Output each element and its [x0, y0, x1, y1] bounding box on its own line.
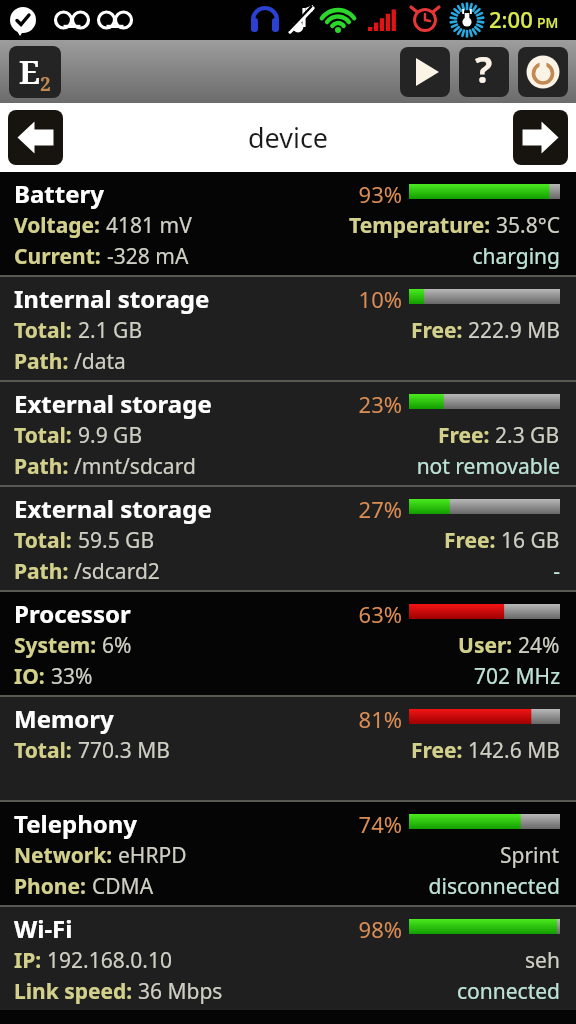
staticText: Network: [14, 841, 118, 870]
staticText: /sdcard2 [74, 557, 160, 586]
staticText: Current: [14, 242, 107, 271]
button[interactable]: External storage [0, 382, 576, 485]
staticText: /data [74, 347, 126, 376]
staticText: Total: [14, 526, 78, 555]
staticText: 27% [330, 494, 402, 524]
staticText: 192.168.0.10 [47, 946, 172, 975]
staticText: connected [0, 977, 560, 1006]
staticText: External storage [14, 387, 212, 420]
button[interactable]: Telephony [0, 802, 576, 905]
staticText: 2:00 [489, 4, 533, 34]
staticText: Sprint [500, 841, 560, 870]
button[interactable]: Elixir 2 home [9, 46, 61, 98]
staticText: 98% [330, 914, 402, 944]
staticText: 10% [330, 284, 402, 314]
staticText: Processor [14, 597, 131, 630]
staticText: 9.9 GB [78, 421, 143, 450]
staticText: eHRPD [118, 841, 187, 870]
staticText: Free: [411, 316, 468, 345]
staticText: 35.8°C [496, 211, 560, 240]
button[interactable]: External storage [0, 487, 576, 590]
staticText: charging [0, 242, 560, 271]
staticText: Voltage: [14, 211, 106, 240]
staticText: disconnected [0, 872, 560, 901]
staticText: Temperature: [349, 211, 496, 240]
button[interactable]: Settings [518, 47, 568, 97]
button[interactable]: Memory [0, 697, 576, 800]
staticText: Path: [14, 557, 74, 586]
staticText: System: [14, 631, 102, 660]
staticText: 2.3 GB [495, 421, 560, 450]
staticText: seh [525, 946, 560, 975]
staticText: Path: [14, 347, 74, 376]
staticText: 2 [40, 71, 51, 97]
staticText: 222.9 MB [468, 316, 560, 345]
staticText: - [0, 557, 560, 586]
button[interactable]: Processor [0, 592, 576, 695]
button[interactable]: Previous screen [8, 110, 63, 165]
staticText: ? [475, 47, 493, 94]
staticText: Wi-Fi [14, 912, 73, 945]
staticText: /mnt/sdcard [74, 452, 196, 481]
staticText: 93% [330, 179, 402, 209]
staticText: 4181 mV [106, 211, 192, 240]
staticText: External storage [14, 492, 212, 525]
staticText: Total: [14, 736, 78, 765]
staticText: 24% [518, 631, 560, 660]
staticText: Total: [14, 316, 78, 345]
staticText: 33% [51, 662, 93, 691]
button[interactable]: Battery [0, 172, 576, 275]
button[interactable]: Internal storage [0, 277, 576, 380]
staticText: 2.1 GB [78, 316, 143, 345]
staticText: 770.3 MB [78, 736, 170, 765]
staticText: Phone: [14, 872, 92, 901]
staticText: 702 MHz [0, 662, 560, 691]
staticText: Memory [14, 702, 114, 735]
staticText: PM [537, 13, 559, 32]
staticText: E [19, 50, 40, 94]
staticText: Telephony [14, 807, 138, 840]
staticText: Free: [411, 736, 468, 765]
staticText: Free: [438, 421, 495, 450]
button[interactable]: Wi-Fi [0, 907, 576, 1010]
staticText: Free: [444, 526, 501, 555]
staticText: Total: [14, 421, 78, 450]
staticText: IP: [14, 946, 47, 975]
staticText: 36 Mbps [138, 977, 223, 1006]
staticText: 16 GB [501, 526, 560, 555]
staticText: CDMA [92, 872, 154, 901]
button[interactable]: Help [459, 47, 509, 97]
staticText: 59.5 GB [78, 526, 155, 555]
staticText: Battery [14, 177, 104, 210]
staticText: 142.6 MB [468, 736, 560, 765]
staticText: 6% [102, 631, 132, 660]
staticText: -328 mA [107, 242, 189, 271]
staticText: Path: [14, 452, 74, 481]
staticText: device [0, 119, 576, 156]
staticText: 81% [330, 704, 402, 734]
staticText: 63% [330, 599, 402, 629]
staticText: User: [458, 631, 518, 660]
staticText: 23% [330, 389, 402, 419]
button[interactable]: Next screen [513, 110, 568, 165]
staticText: 74% [330, 809, 402, 839]
staticText: not removable [0, 452, 560, 481]
staticText: Internal storage [14, 282, 210, 315]
button[interactable]: Run [400, 47, 450, 97]
staticText: Link speed: [14, 977, 138, 1006]
staticText: IO: [14, 662, 51, 691]
